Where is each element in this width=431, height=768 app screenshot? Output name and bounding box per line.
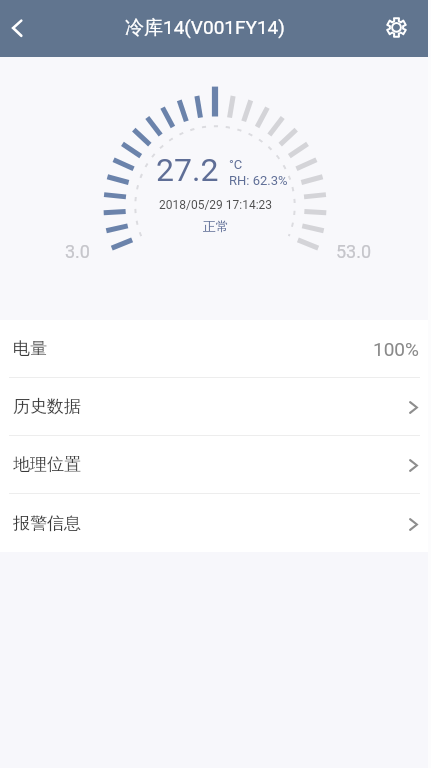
staticText: RH: 62.3%	[229, 173, 288, 188]
staticText: 3.0	[65, 241, 90, 262]
staticText: 电量	[13, 338, 47, 359]
button[interactable]: 电量	[0, 320, 431, 378]
staticText: 2018/05/29 17:14:23	[159, 198, 273, 212]
button[interactable]: 历史数据	[0, 378, 431, 436]
staticText: 53.0	[336, 241, 372, 262]
staticText: 100%	[373, 338, 419, 360]
staticText: 历史数据	[13, 396, 81, 417]
staticText: °C	[229, 157, 243, 172]
button[interactable]: 地理位置	[0, 436, 431, 494]
staticText: 冷库14(V001FY14)	[125, 16, 285, 40]
staticText: 27.2	[156, 151, 219, 189]
staticText: 地理位置	[13, 454, 81, 475]
button[interactable]: 报警信息	[0, 494, 431, 552]
staticText: 正常	[203, 218, 229, 234]
staticText: 报警信息	[13, 513, 81, 534]
button[interactable]: Settings	[381, 0, 431, 57]
button[interactable]: Back	[0, 0, 42, 57]
